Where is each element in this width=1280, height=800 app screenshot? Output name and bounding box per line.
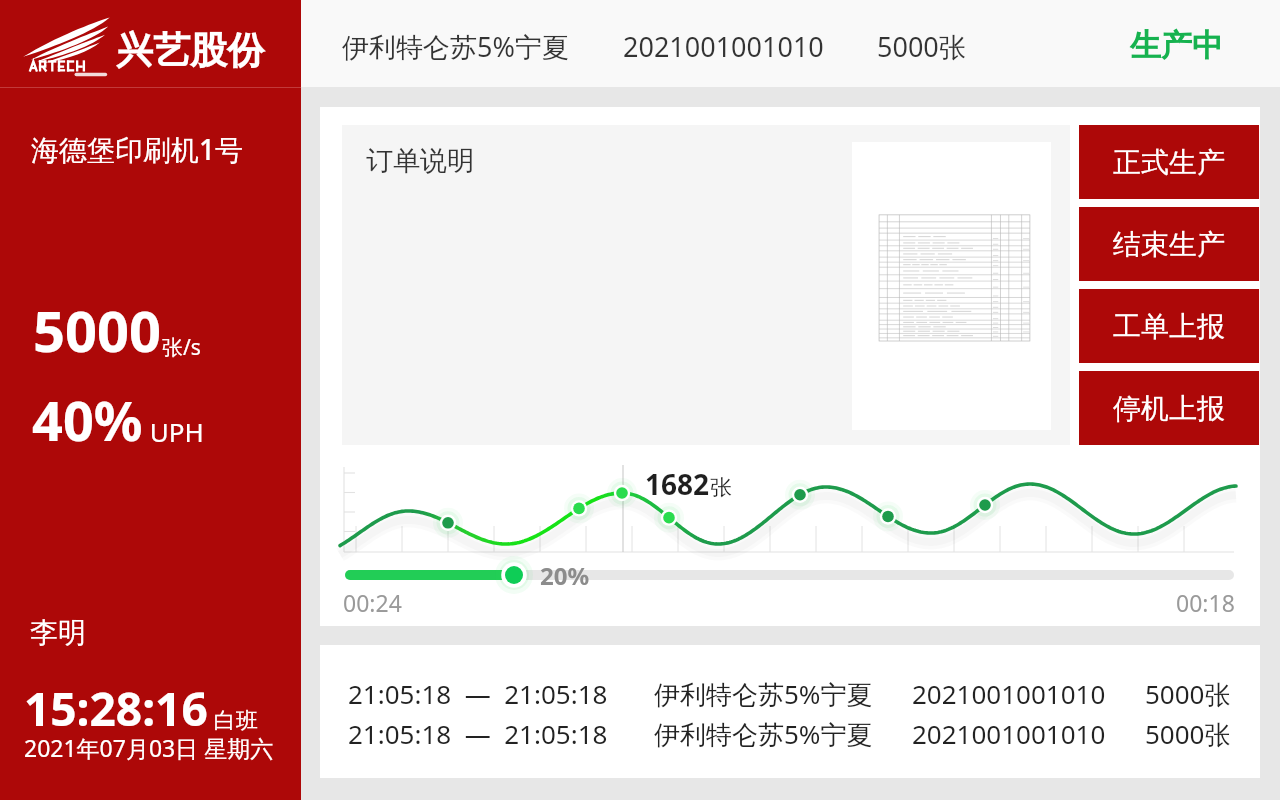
staticText: 张 bbox=[710, 474, 732, 502]
staticText: 2021001001010 bbox=[623, 28, 824, 65]
staticText: 订单说明 bbox=[366, 144, 474, 178]
staticText: 2021001001010 bbox=[912, 676, 1106, 711]
staticText: 伊利特仑苏5%宁夏 bbox=[654, 676, 873, 712]
button[interactable]: 20% bbox=[345, 559, 1234, 591]
staticText: 21:05:18 — 21:05:18 bbox=[348, 676, 608, 711]
staticText: 5000张 bbox=[1145, 716, 1231, 752]
staticText: 工单上报 bbox=[1113, 309, 1225, 344]
staticText: 2021001001010 bbox=[912, 716, 1106, 751]
staticText: UPH bbox=[143, 414, 204, 449]
staticText: 00:18 bbox=[1176, 587, 1235, 618]
staticText: 张/s bbox=[162, 333, 201, 362]
staticText: 停机上报 bbox=[1113, 391, 1225, 426]
button[interactable]: 正式生产 bbox=[1079, 125, 1259, 199]
staticText: 李明 bbox=[30, 615, 86, 650]
staticText: 白班 bbox=[208, 704, 258, 734]
button[interactable]: 21:05:18 — 21:05:18 bbox=[320, 712, 1260, 752]
staticText: 伊利特仑苏5%宁夏 bbox=[342, 28, 569, 65]
staticText: 海德堡印刷机1号 bbox=[31, 130, 244, 168]
staticText: 2021年07月03日 星期六 bbox=[24, 732, 274, 763]
staticText: 00:24 bbox=[343, 587, 402, 618]
button[interactable]: 停机上报 bbox=[1079, 371, 1259, 445]
staticText: 40% bbox=[32, 383, 143, 457]
staticText: 5000张 bbox=[1145, 676, 1231, 712]
staticText: 结束生产 bbox=[1113, 227, 1225, 262]
staticText: 伊利特仑苏5%宁夏 bbox=[654, 716, 873, 752]
button[interactable]: Order document preview bbox=[852, 142, 1051, 430]
staticText: 兴艺股份 bbox=[116, 27, 264, 74]
button[interactable]: 21:05:18 — 21:05:18 bbox=[320, 672, 1260, 712]
button[interactable]: 生产中 bbox=[1122, 18, 1231, 73]
staticText: 21:05:18 — 21:05:18 bbox=[348, 716, 608, 751]
staticText: 1682 bbox=[645, 465, 710, 503]
staticText: 生产中 bbox=[1130, 26, 1223, 65]
button[interactable]: 订单说明 bbox=[342, 125, 1070, 445]
button[interactable]: 结束生产 bbox=[1079, 207, 1259, 281]
staticText: 5000张 bbox=[877, 28, 966, 65]
staticText: 20% bbox=[540, 559, 590, 591]
button[interactable]: 工单上报 bbox=[1079, 289, 1259, 363]
staticText: 正式生产 bbox=[1113, 145, 1225, 180]
button[interactable]: ARTECH printing logo bbox=[18, 12, 112, 76]
staticText: 15:28:16 bbox=[24, 677, 208, 740]
staticText: 5000 bbox=[33, 292, 162, 368]
